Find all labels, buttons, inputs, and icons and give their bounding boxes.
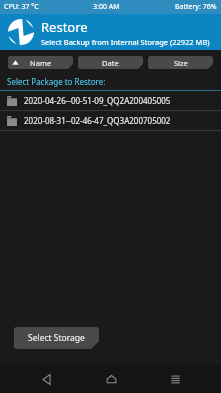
other: Restore	[8, 19, 34, 45]
button[interactable]: Recent apps	[157, 365, 193, 393]
button[interactable]: 2020-08-31--02-46-47_QQ3A200705002	[0, 111, 221, 130]
button[interactable]: Date	[78, 56, 143, 69]
staticText: Date	[102, 58, 119, 68]
staticText: CPU: 37 °C	[4, 2, 39, 12]
staticText: 2020-08-31--02-46-47_QQ3A200705002	[24, 115, 171, 126]
staticText: Battery: 76%	[175, 2, 217, 12]
button[interactable]: Size	[148, 56, 213, 69]
button[interactable]: Home	[93, 365, 129, 393]
staticText: 3:00 AM	[93, 2, 120, 12]
staticText: Size	[174, 58, 188, 68]
staticText: Restore	[41, 18, 88, 36]
button[interactable]: Back	[28, 365, 64, 393]
staticText: 2020-04-26--00-51-09_QQ2A200405005	[24, 95, 171, 106]
staticText: Name	[30, 58, 52, 68]
button[interactable]: Select Storage	[14, 327, 99, 349]
staticText: Select Storage	[28, 332, 85, 344]
button[interactable]: 2020-04-26--00-51-09_QQ2A200405005	[0, 91, 221, 110]
button[interactable]: Name	[8, 56, 73, 69]
staticText: Select Backup from Internal Storage (229…	[41, 37, 210, 47]
staticText: Select Package to Restore:	[7, 76, 106, 87]
